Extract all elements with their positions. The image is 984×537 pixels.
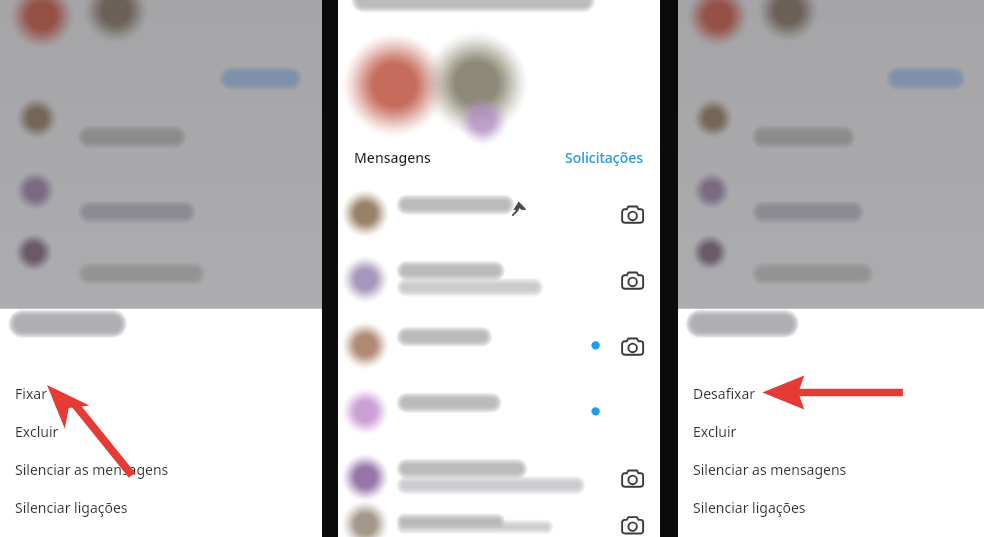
button[interactable] [338, 315, 660, 381]
button[interactable]: Silenciar ligações [0, 488, 322, 526]
staticText: Fixar [15, 384, 47, 403]
staticText: Desafixar [693, 384, 756, 403]
button[interactable] [338, 381, 660, 447]
staticText: Silenciar ligações [693, 498, 806, 517]
button[interactable]: Solicitações [565, 148, 644, 167]
button[interactable] [338, 513, 660, 537]
button[interactable]: Silenciar as mensagens [678, 450, 984, 488]
button[interactable] [338, 447, 660, 513]
button[interactable] [338, 183, 660, 249]
staticText: Silenciar as mensagens [693, 460, 847, 479]
button[interactable]: Fixar [0, 374, 322, 412]
staticText: Silenciar as mensagens [15, 460, 169, 479]
button[interactable]: Excluir [678, 412, 984, 450]
button[interactable] [338, 249, 660, 315]
button[interactable]: Excluir [0, 412, 322, 450]
button[interactable]: Silenciar ligações [678, 488, 984, 526]
staticText: Excluir [693, 422, 737, 441]
staticText: Excluir [15, 422, 59, 441]
staticText: Mensagens [354, 148, 431, 167]
button[interactable]: Desafixar [678, 374, 984, 412]
button[interactable]: Silenciar as mensagens [0, 450, 322, 488]
staticText: Silenciar ligações [15, 498, 128, 517]
staticText: Solicitações [565, 148, 644, 167]
